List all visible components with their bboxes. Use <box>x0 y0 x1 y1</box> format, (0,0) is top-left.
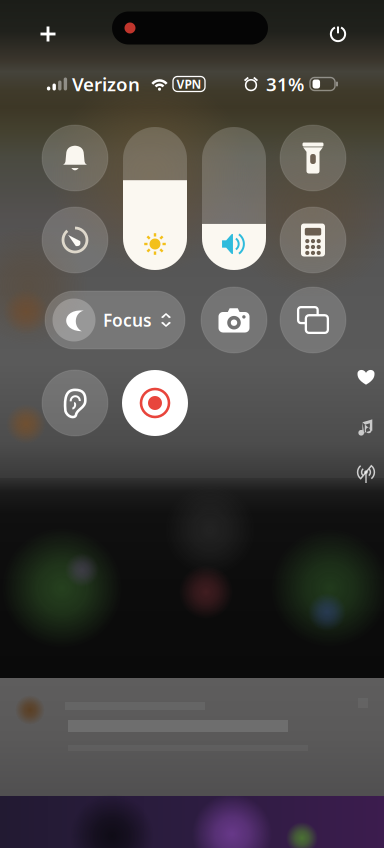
button[interactable]: Flashlight <box>280 125 346 191</box>
button[interactable]: Volume <box>202 127 266 270</box>
staticText: Focus <box>103 308 152 331</box>
staticText: Verizon <box>72 72 140 96</box>
button[interactable]: Hearing <box>42 370 108 436</box>
button[interactable]: Add control <box>28 14 68 54</box>
button[interactable]: Camera <box>201 287 267 353</box>
staticText: 31% <box>266 72 304 96</box>
button[interactable]: Timer <box>42 207 108 273</box>
button[interactable]: Display brightness <box>123 127 187 270</box>
staticText: VPN <box>176 76 201 92</box>
button[interactable]: Power <box>318 14 358 54</box>
button[interactable]: Screen Mirroring <box>280 287 346 353</box>
button[interactable]: Focus <box>45 291 185 349</box>
button[interactable]: Silent mode <box>42 125 108 191</box>
button[interactable]: Screen Recording <box>122 370 188 436</box>
button[interactable]: Calculator <box>280 207 346 273</box>
